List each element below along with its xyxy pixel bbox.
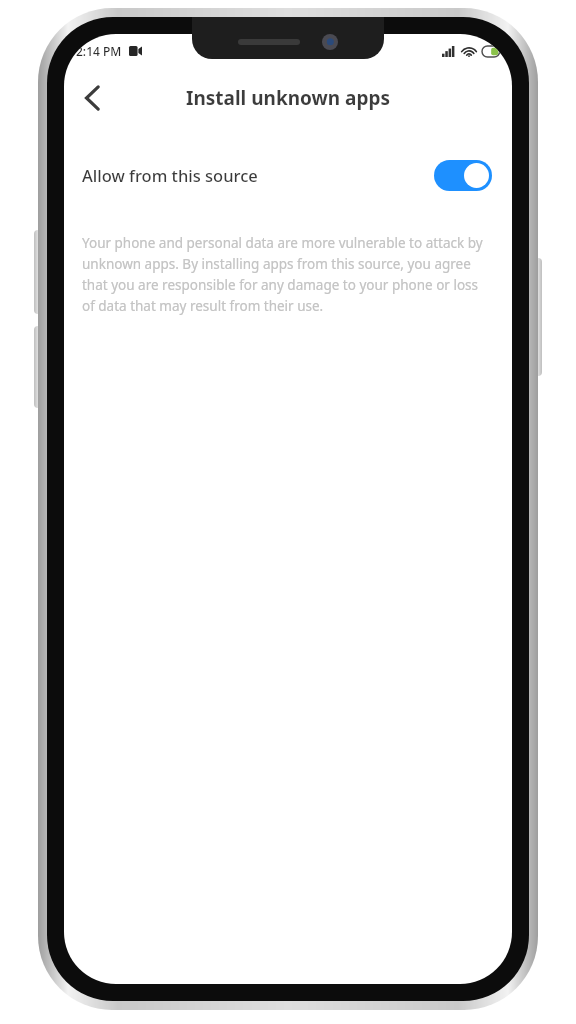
staticText: Allow from this source [82, 164, 434, 186]
staticText: 2:14 PM [76, 43, 122, 59]
staticText: Your phone and personal data are more vu… [82, 234, 492, 315]
button[interactable]: Allow from this source toggle [434, 160, 492, 191]
staticText: Install unknown apps [186, 85, 390, 111]
button[interactable]: Allow from this source [64, 150, 512, 200]
button[interactable]: Back [70, 76, 114, 120]
